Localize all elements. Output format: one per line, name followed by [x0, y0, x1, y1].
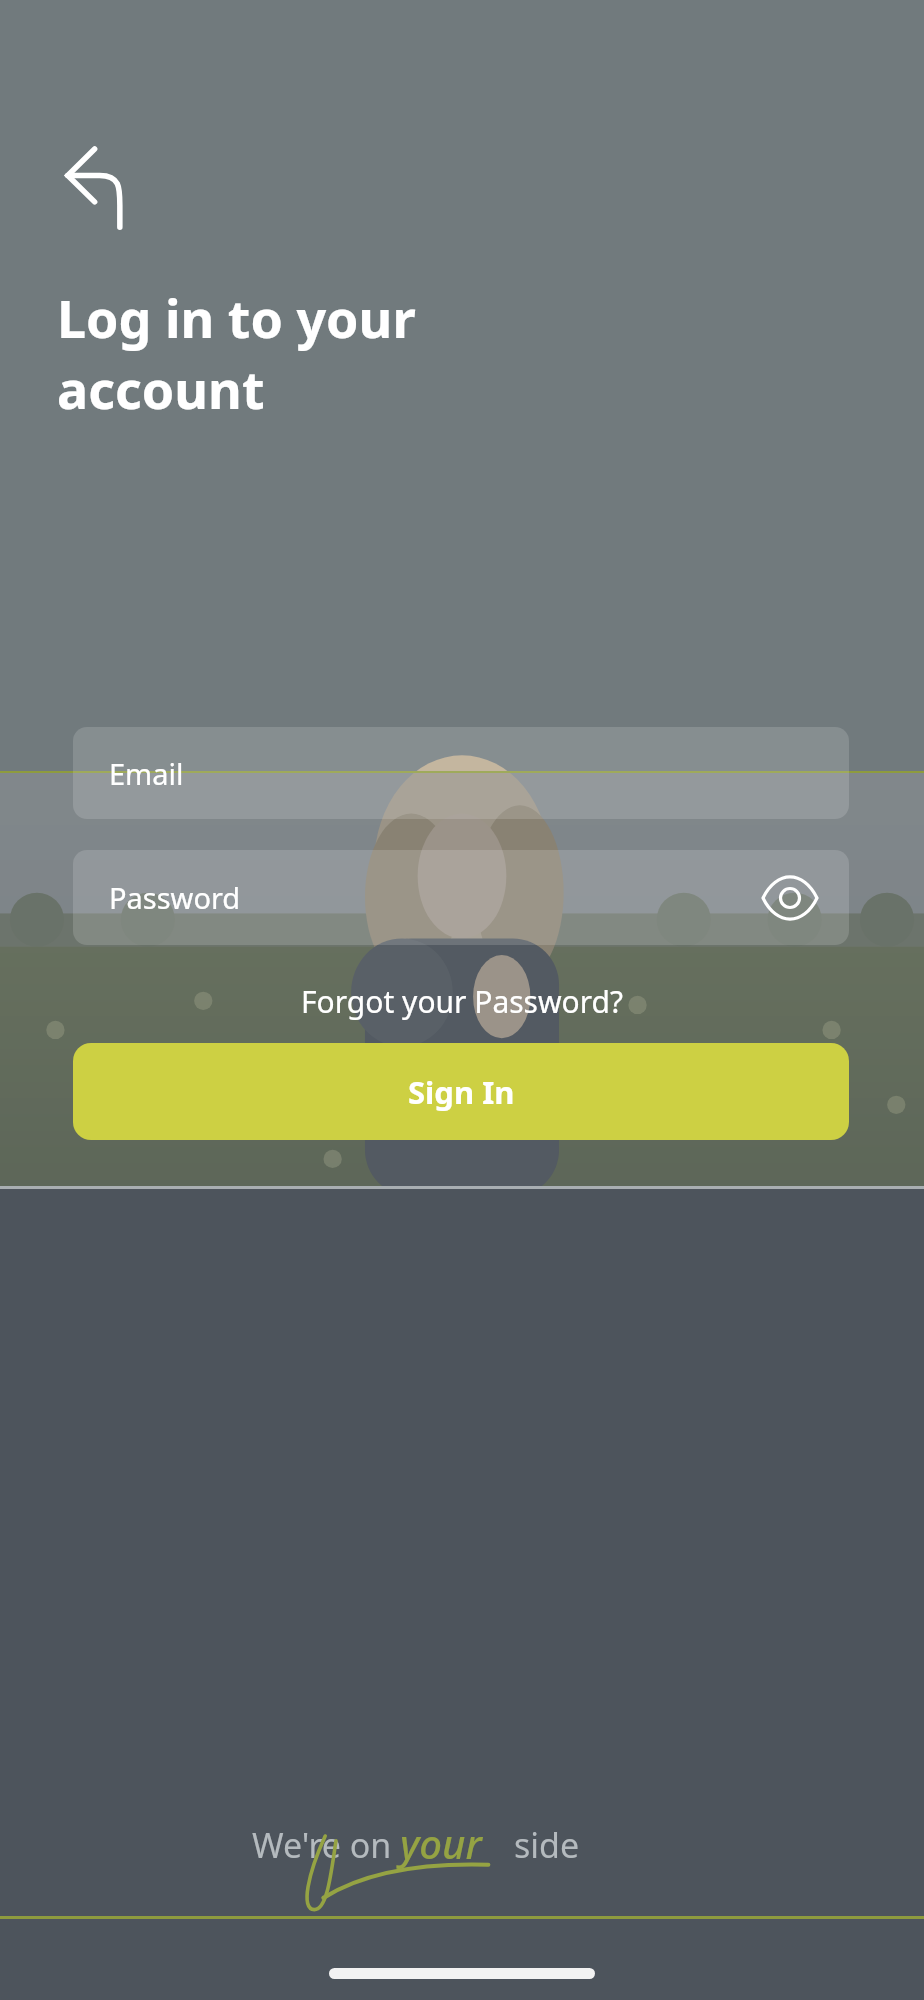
- staticText: Password: [109, 878, 241, 917]
- button[interactable]: Show password: [746, 858, 834, 938]
- button[interactable]: Password: [73, 850, 849, 945]
- button[interactable]: Email: [73, 727, 849, 819]
- staticText: your: [400, 1816, 482, 1870]
- button[interactable]: Back: [56, 142, 140, 230]
- staticText: Email: [109, 754, 184, 793]
- staticText: account: [57, 353, 265, 424]
- button[interactable]: Forgot your Password?: [0, 970, 924, 1032]
- staticText: Forgot your Password?: [301, 981, 623, 1022]
- button[interactable]: Sign In: [73, 1043, 849, 1140]
- staticText: Log in to your: [57, 282, 416, 353]
- staticText: We're on: [252, 1822, 392, 1868]
- staticText: Sign In: [408, 1071, 515, 1113]
- staticText: side: [514, 1822, 580, 1868]
